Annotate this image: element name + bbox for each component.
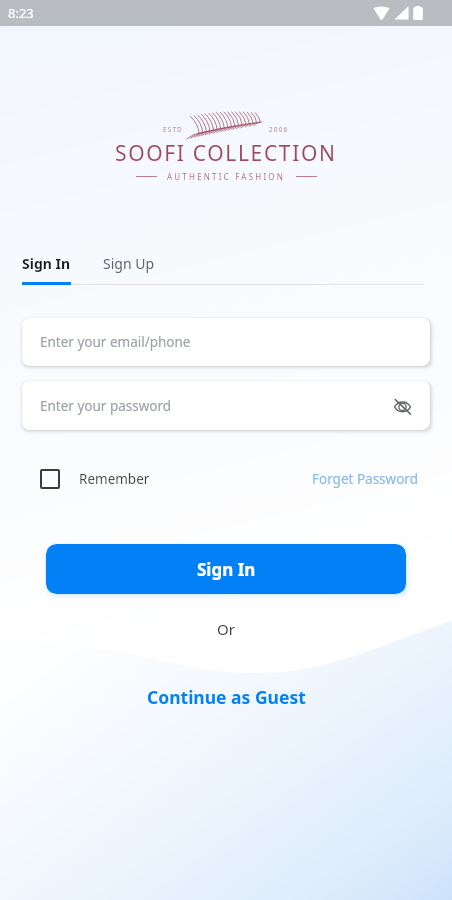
button[interactable]: Sign In xyxy=(46,544,406,594)
button[interactable]: Remember xyxy=(40,469,150,489)
staticText: Continue as Guest xyxy=(147,685,306,709)
staticText: Sign Up xyxy=(103,254,155,273)
staticText: Enter your password xyxy=(40,397,172,415)
staticText: Enter your email/phone xyxy=(40,333,191,351)
staticText: ESTD xyxy=(163,125,183,134)
staticText: AUTHENTIC FASHION xyxy=(167,171,286,182)
button[interactable]: Sign Up xyxy=(103,254,155,285)
staticText: SOOFI COLLECTION xyxy=(115,139,337,168)
staticText: Sign In xyxy=(22,254,71,273)
button[interactable]: Forget Password xyxy=(312,470,418,488)
button[interactable]: Enter your email/phone xyxy=(22,318,430,366)
staticText: Remember xyxy=(79,470,150,488)
button[interactable]: Sign In xyxy=(22,254,71,285)
button[interactable]: Show password xyxy=(386,390,418,422)
staticText: Sign In xyxy=(197,558,256,581)
button[interactable]: Enter your password xyxy=(22,381,430,430)
button[interactable]: Continue as Guest xyxy=(0,680,452,714)
staticText: Forget Password xyxy=(312,470,418,488)
staticText: 2006 xyxy=(269,125,289,134)
staticText: Or xyxy=(0,619,452,639)
staticText: 8:23 xyxy=(8,4,34,22)
